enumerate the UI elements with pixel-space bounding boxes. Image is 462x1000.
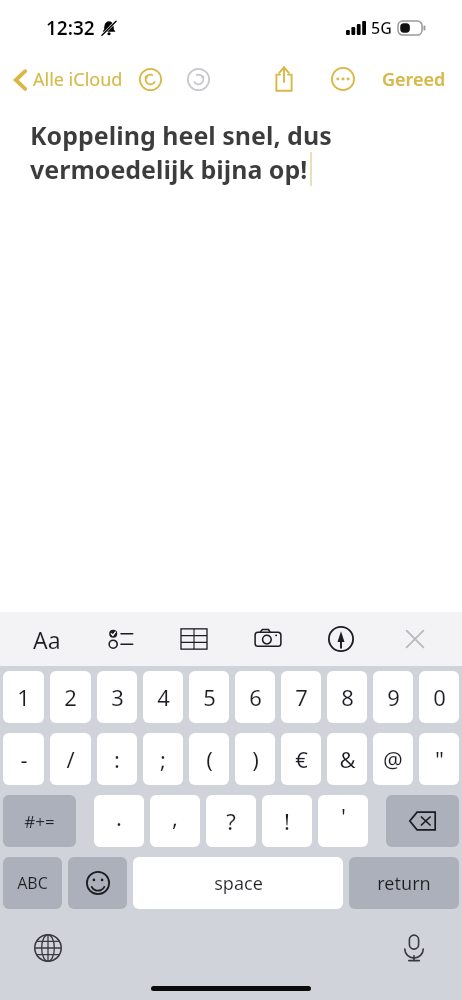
- staticText: !: [284, 806, 290, 836]
- button[interactable]: ': [318, 795, 368, 847]
- button[interactable]: space: [133, 857, 343, 909]
- staticText: 3: [111, 682, 124, 712]
- button[interactable]: Markup: [315, 615, 367, 663]
- staticText: 5: [203, 682, 216, 712]
- button[interactable]: 1: [3, 671, 44, 723]
- staticText: (: [206, 744, 213, 774]
- button[interactable]: #+=: [3, 795, 76, 847]
- button[interactable]: ;: [143, 733, 183, 785]
- button[interactable]: 5: [189, 671, 229, 723]
- staticText: 7: [295, 682, 308, 712]
- staticText: ;: [160, 744, 166, 774]
- staticText: 4: [157, 682, 170, 712]
- button[interactable]: Emoji: [68, 857, 127, 909]
- staticText: 5G: [371, 17, 392, 39]
- button[interactable]: ABC: [3, 857, 62, 909]
- staticText: return: [377, 871, 431, 896]
- staticText: Aa: [33, 624, 61, 655]
- button[interactable]: Checklist: [95, 615, 147, 663]
- staticText: ): [252, 744, 259, 774]
- button[interactable]: !: [262, 795, 312, 847]
- button[interactable]: ": [419, 733, 459, 785]
- staticText: @: [383, 744, 403, 774]
- button[interactable]: Close keyboard: [389, 615, 441, 663]
- button[interactable]: :: [97, 733, 137, 785]
- staticText: €: [295, 744, 308, 774]
- button[interactable]: .: [94, 795, 144, 847]
- button[interactable]: 4: [143, 671, 183, 723]
- button[interactable]: -: [3, 733, 44, 785]
- button[interactable]: Camera: [242, 615, 294, 663]
- button[interactable]: €: [281, 733, 321, 785]
- button[interactable]: 7: [281, 671, 321, 723]
- staticText: -: [20, 744, 28, 774]
- button[interactable]: return: [349, 857, 459, 909]
- button[interactable]: Backspace: [386, 795, 459, 847]
- button[interactable]: Alle iCloud: [8, 63, 129, 96]
- staticText: ': [341, 801, 346, 831]
- staticText: ?: [226, 806, 236, 836]
- button[interactable]: Table: [168, 615, 220, 663]
- button[interactable]: Gereed: [376, 63, 452, 96]
- button[interactable]: More options: [324, 60, 362, 98]
- staticText: 0: [433, 682, 446, 712]
- button[interactable]: @: [373, 733, 413, 785]
- staticText: 12:32: [46, 15, 95, 41]
- button[interactable]: 9: [373, 671, 413, 723]
- button[interactable]: (: [189, 733, 229, 785]
- button[interactable]: 6: [235, 671, 275, 723]
- staticText: :: [114, 744, 120, 774]
- button[interactable]: Undo: [133, 62, 167, 96]
- staticText: 1: [17, 682, 30, 712]
- button[interactable]: 2: [50, 671, 91, 723]
- button[interactable]: 8: [327, 671, 367, 723]
- staticText: ABC: [17, 872, 48, 894]
- button[interactable]: Redo: [181, 62, 215, 96]
- staticText: ,: [172, 802, 178, 832]
- staticText: vermoedelijk bijna op!: [30, 152, 308, 186]
- button[interactable]: &: [327, 733, 367, 785]
- staticText: 9: [387, 682, 400, 712]
- button[interactable]: Share: [264, 59, 304, 99]
- staticText: Gereed: [382, 67, 446, 92]
- button[interactable]: ?: [206, 795, 256, 847]
- staticText: 6: [249, 682, 262, 712]
- staticText: 8: [341, 682, 354, 712]
- staticText: 2: [64, 682, 77, 712]
- staticText: .: [116, 802, 122, 832]
- staticText: &: [339, 744, 356, 774]
- button[interactable]: ,: [150, 795, 200, 847]
- button[interactable]: Dictate: [392, 926, 436, 970]
- button[interactable]: Change keyboard language: [26, 926, 70, 970]
- button[interactable]: ): [235, 733, 275, 785]
- staticText: Alle iCloud: [33, 67, 123, 92]
- staticText: Koppeling heel snel, dus: [30, 118, 332, 152]
- button[interactable]: 3: [97, 671, 137, 723]
- staticText: ": [435, 744, 444, 774]
- staticText: /: [66, 744, 75, 774]
- staticText: #+=: [24, 810, 55, 833]
- staticText: space: [214, 871, 263, 896]
- button[interactable]: Text format: [21, 615, 73, 663]
- button[interactable]: /: [50, 733, 91, 785]
- button[interactable]: 0: [419, 671, 459, 723]
